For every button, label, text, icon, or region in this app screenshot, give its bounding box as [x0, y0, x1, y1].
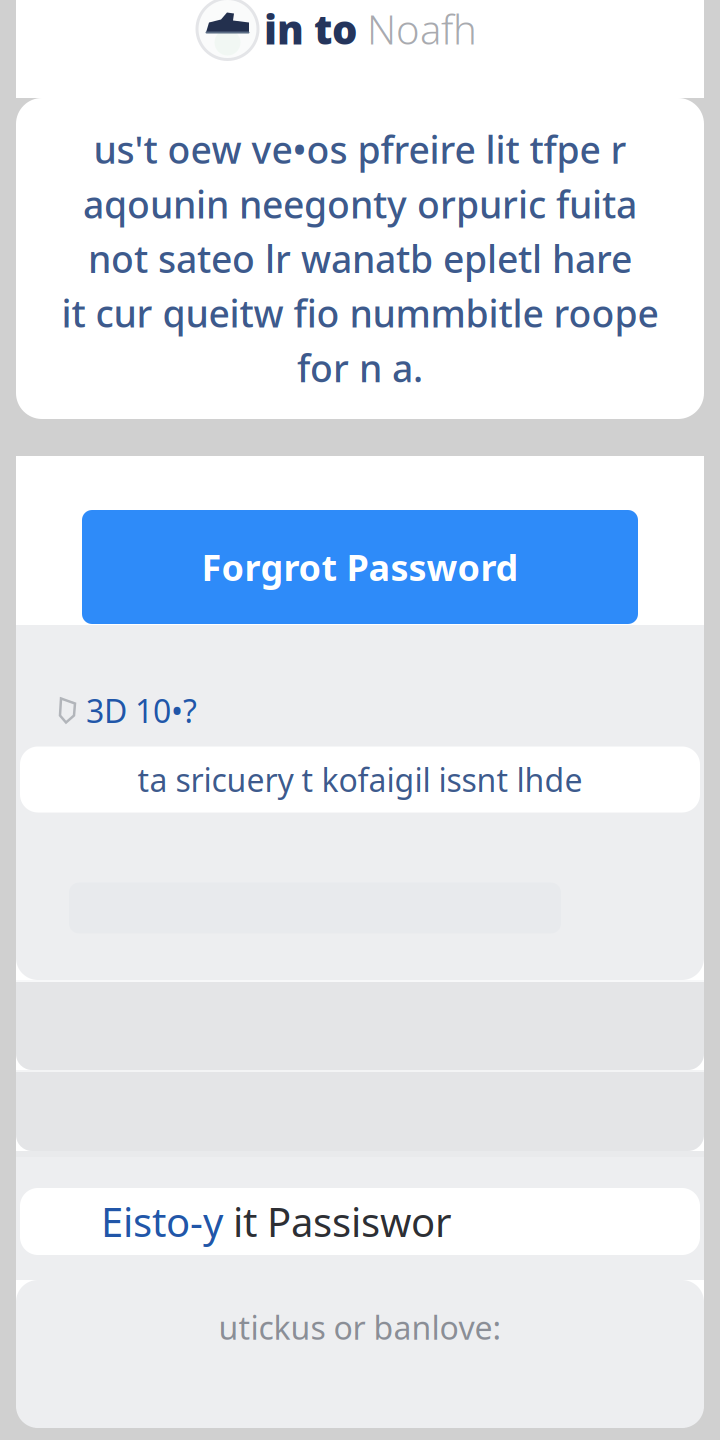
staticText: for n a. — [297, 343, 423, 392]
staticText: it cur queitw fio nummbitle roope — [61, 288, 658, 338]
staticText: it Passiswor — [233, 1195, 452, 1248]
staticText: us't oew ve•os pfreire lit tfpe r — [93, 125, 626, 174]
staticText: 3D 10•? — [86, 689, 197, 732]
staticText: in to — [264, 2, 357, 55]
staticText: aqounin neegonty orpuric fuita — [83, 179, 637, 229]
staticText: Forgrot Password — [201, 543, 518, 591]
button[interactable]: Eisto-y — [16, 1188, 704, 1255]
staticText: utickus or banlove: — [218, 1306, 501, 1348]
staticText: not sateo lr wanatb epletl hare — [88, 234, 632, 283]
button[interactable]: Account — [197, 0, 258, 59]
staticText: Noafh — [357, 2, 477, 55]
staticText: Eisto-y — [101, 1195, 233, 1248]
button[interactable]: ta sricuery t kofaigil issnt lhde — [16, 746, 704, 812]
staticText: ta sricuery t kofaigil issnt lhde — [137, 758, 582, 801]
button[interactable]: Forgrot Password — [82, 510, 638, 624]
